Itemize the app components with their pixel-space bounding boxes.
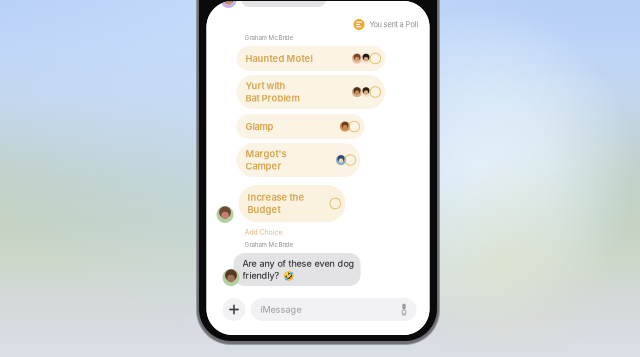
button[interactable]: Margot's [236,143,360,177]
staticText: Graham McBride [244,241,293,248]
button[interactable]: Add attachment [222,298,245,321]
staticText: friendly? 🤣 [242,270,293,281]
staticText: Margot's [245,148,286,159]
button[interactable]: Glamp [236,114,364,139]
button[interactable]: Haunted Motel [236,46,385,71]
staticText: You sent a Poll [369,20,418,29]
button[interactable]: Add Choice [244,228,282,236]
staticText: Camper [245,160,281,172]
button[interactable]: iMessage [250,298,416,321]
staticText: Glamp [245,121,273,132]
staticText: Haunted Motel [245,53,312,64]
staticText: Budget [247,204,280,215]
button[interactable]: Yurt with [236,75,385,109]
staticText: iMessage [260,304,301,315]
staticText: Add Choice [244,228,282,236]
staticText: Graham McBride [244,34,293,41]
staticText: Increase the [247,192,304,203]
staticText: Bat Problem [245,92,299,104]
staticText: Yurt with [245,80,285,91]
staticText: Are any of these even dog [242,258,354,269]
button[interactable]: Increase the [238,185,345,222]
